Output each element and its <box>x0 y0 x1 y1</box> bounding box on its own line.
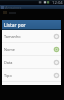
staticText: Tamanho <box>4 34 53 39</box>
button[interactable]: Nome <box>2 43 61 56</box>
other: Status icons <box>0 0 64 5</box>
button[interactable]: Data <box>2 56 61 69</box>
button[interactable]: Tipo <box>2 69 61 82</box>
staticText: Data <box>4 60 53 65</box>
staticText: Tipo <box>4 73 53 78</box>
staticText: Listar por <box>4 22 26 28</box>
button[interactable]: Arquivos <box>0 5 64 9</box>
button[interactable]: Tamanho <box>2 30 61 43</box>
staticText: Arquivos <box>5 5 22 9</box>
staticText: 12:04 <box>52 0 63 5</box>
staticText: Nome <box>4 47 53 52</box>
